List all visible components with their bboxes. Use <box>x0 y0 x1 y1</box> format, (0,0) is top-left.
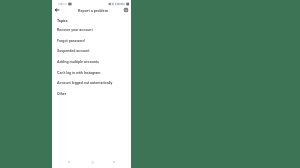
staticText: Forgot password <box>57 39 85 43</box>
button[interactable]: Recents <box>109 157 119 167</box>
staticText: Adding multiple accounts <box>57 60 99 64</box>
staticText: Topics <box>57 19 68 23</box>
button[interactable]: Suspended account <box>52 45 131 56</box>
staticText: Account logged out automatically <box>57 81 113 85</box>
staticText: Suspended account <box>57 49 90 53</box>
button[interactable]: Can't log in with Instagram <box>52 67 131 78</box>
staticText: Report a problem <box>78 8 109 13</box>
button[interactable]: Help <box>122 6 130 14</box>
button[interactable]: Back <box>53 6 61 14</box>
button[interactable]: Adding multiple accounts <box>52 56 131 67</box>
staticText: Other <box>57 92 67 96</box>
button[interactable]: Recover your account <box>52 24 131 35</box>
staticText: Can't log in with Instagram <box>57 71 101 75</box>
button[interactable]: Forgot password <box>52 35 131 46</box>
button[interactable]: Home <box>87 157 97 167</box>
staticText: Recover your account <box>57 28 93 32</box>
button[interactable]: Other <box>52 88 131 99</box>
button[interactable]: Back <box>64 157 74 167</box>
button[interactable]: Account logged out automatically <box>52 77 131 88</box>
